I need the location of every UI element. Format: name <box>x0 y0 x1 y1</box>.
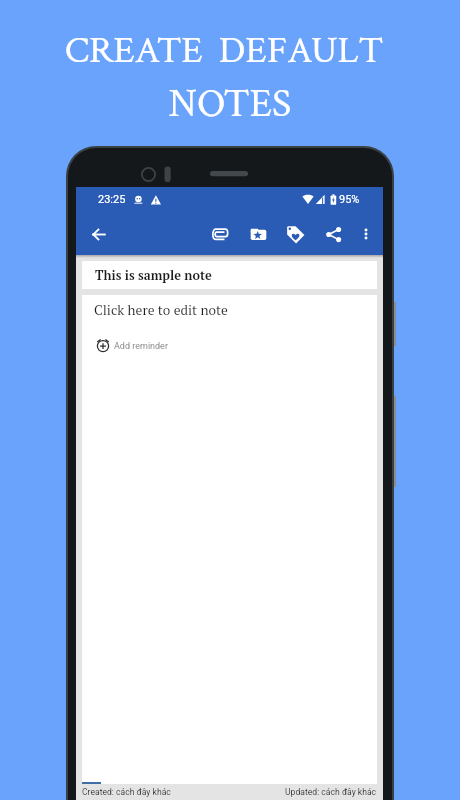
button[interactable]: Share <box>320 221 346 247</box>
staticText: Add reminder <box>114 341 168 352</box>
staticText: NOTES <box>0 78 460 130</box>
button[interactable]: This is sample note <box>82 261 377 289</box>
staticText: Updated: cách đây khác <box>285 787 377 797</box>
staticText: This is sample note <box>95 267 212 284</box>
staticText: 23:25 <box>98 193 126 206</box>
button[interactable]: Attach file <box>207 221 233 247</box>
staticText: 95% <box>339 193 360 206</box>
button[interactable]: Back <box>84 220 112 248</box>
button[interactable]: Click here to edit note <box>94 301 228 319</box>
button[interactable]: Add reminder <box>96 338 168 352</box>
staticText: Created: cách đây khác <box>82 787 171 797</box>
staticText: CREATE DEFAULT <box>0 26 454 75</box>
button[interactable]: More options <box>353 221 379 247</box>
button[interactable]: Label <box>282 221 308 247</box>
button[interactable]: Notebook <box>245 221 271 247</box>
